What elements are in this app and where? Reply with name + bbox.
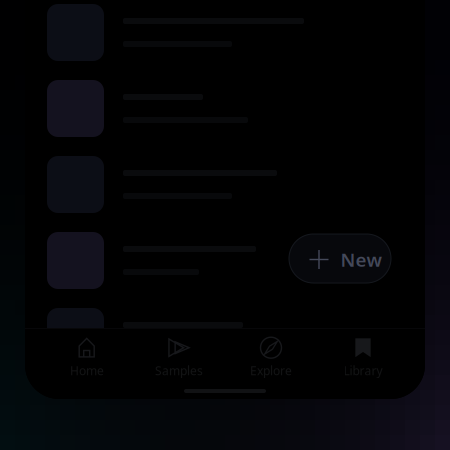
button[interactable] [25, 0, 425, 70]
button[interactable]: Home [41, 329, 133, 389]
button[interactable] [25, 70, 425, 146]
staticText: Samples [155, 363, 203, 379]
button[interactable]: Explore [225, 329, 317, 389]
staticText: Home [70, 363, 104, 379]
button[interactable] [25, 298, 425, 374]
button[interactable]: Samples [133, 329, 225, 389]
staticText: Explore [250, 363, 292, 379]
staticText: New [340, 247, 381, 272]
staticText: Library [343, 363, 382, 379]
button[interactable] [25, 222, 425, 298]
button[interactable]: Library [317, 329, 409, 389]
button[interactable] [25, 146, 425, 222]
button[interactable]: New [289, 234, 391, 283]
